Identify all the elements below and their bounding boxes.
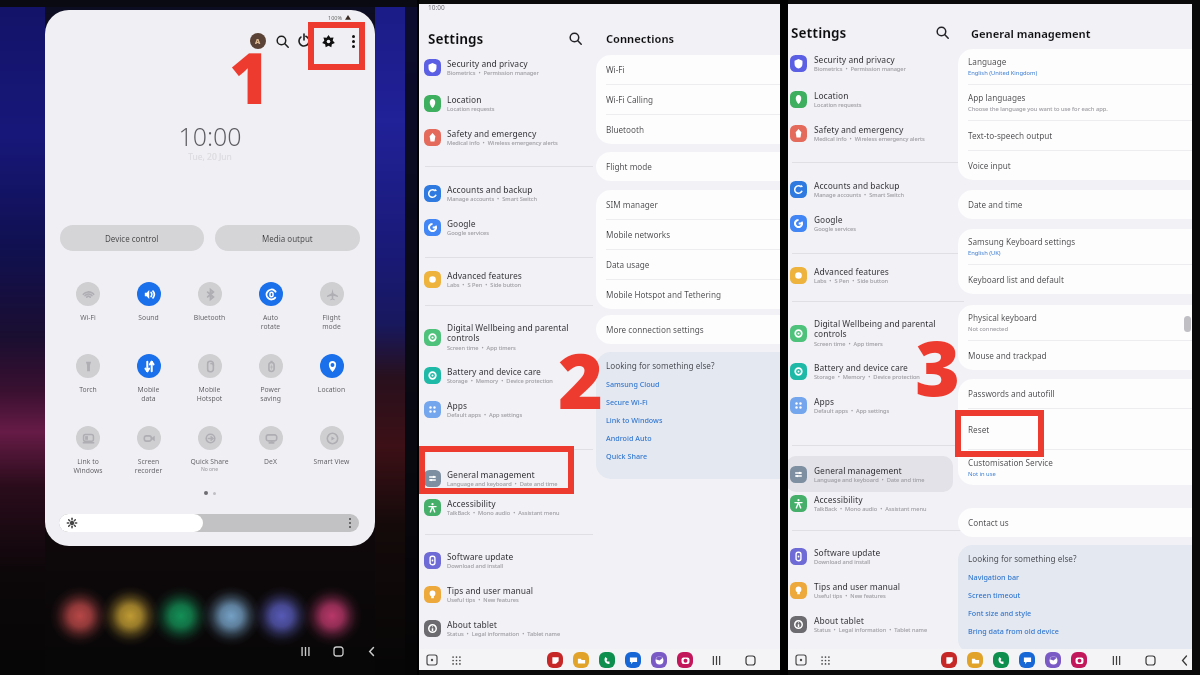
button[interactable]: Sound xyxy=(118,282,179,322)
button[interactable]: Home xyxy=(742,652,758,668)
button[interactable]: Camera xyxy=(677,652,693,668)
button[interactable]: Home xyxy=(1142,652,1158,668)
button[interactable]: App languages xyxy=(958,85,1200,120)
button[interactable]: Quick Share xyxy=(606,447,648,465)
staticText: Smart View xyxy=(301,457,362,466)
button[interactable]: Secure Wi-Fi xyxy=(606,393,648,411)
button[interactable]: Search settings xyxy=(564,27,586,49)
button[interactable]: Settings xyxy=(317,30,339,52)
button[interactable] xyxy=(788,456,953,492)
button[interactable]: Phone xyxy=(599,652,615,668)
button[interactable]: Mouse and trackpad xyxy=(958,341,1200,370)
button[interactable]: Messages xyxy=(1019,652,1035,668)
button[interactable]: Keyboard list and default xyxy=(958,265,1200,294)
button[interactable]: Physical keyboard xyxy=(958,305,1200,340)
staticText: Samsung Cloud xyxy=(606,379,660,389)
button[interactable]: Bring data from old device xyxy=(968,622,1059,640)
button[interactable]: Link to Windows xyxy=(606,411,663,429)
button[interactable]: Text-to-speech output xyxy=(958,121,1200,150)
staticText: English (UK) xyxy=(968,249,1001,257)
button[interactable]: Mobile Hotspot and Tethering xyxy=(596,280,780,309)
button[interactable]: Date and time xyxy=(958,190,1200,219)
staticText: Link to Windows xyxy=(606,415,663,425)
staticText: Quick Share xyxy=(606,451,648,461)
button[interactable]: Back xyxy=(1176,652,1192,668)
button[interactable]: All apps xyxy=(816,651,834,669)
staticText: Location xyxy=(814,90,849,101)
button[interactable]: Recents xyxy=(1108,652,1124,668)
button[interactable]: Internet xyxy=(651,652,667,668)
button[interactable]: Media output xyxy=(215,225,360,251)
button[interactable]: Device control xyxy=(60,225,204,251)
button[interactable]: Passwords and autofill xyxy=(958,379,1200,408)
staticText: TalkBack • Mono audio • Assistant menu xyxy=(447,509,560,517)
button[interactable]: Search xyxy=(271,30,293,52)
button[interactable]: Auto rotate xyxy=(240,282,301,331)
staticText: English (United Kingdom) xyxy=(968,69,1038,77)
button[interactable]: Bluetooth xyxy=(596,115,780,144)
button[interactable]: Quick Share xyxy=(179,426,240,473)
staticText: Wi-Fi xyxy=(606,64,625,75)
button[interactable]: More options xyxy=(342,30,364,52)
button[interactable]: Location xyxy=(301,354,362,394)
button[interactable]: More connection settings xyxy=(596,315,780,344)
staticText: Biometrics • Permission manager xyxy=(447,69,539,77)
staticText: Medical info • Wireless emergency alerts xyxy=(814,135,925,143)
button[interactable]: My Files xyxy=(573,652,589,668)
button[interactable]: Wi-Fi xyxy=(596,55,780,84)
button[interactable]: Samsung Cloud xyxy=(606,375,660,393)
button[interactable]: Bluetooth xyxy=(179,282,240,322)
staticText: Bluetooth xyxy=(606,124,644,135)
button[interactable]: Account xyxy=(247,30,269,52)
staticText: Language xyxy=(968,56,1007,67)
button[interactable]: Mobile Hotspot xyxy=(179,354,240,403)
button[interactable]: Power saving xyxy=(240,354,301,403)
button[interactable]: Reset xyxy=(958,409,1200,449)
staticText: Connections xyxy=(606,31,675,46)
staticText: Power saving xyxy=(240,385,301,403)
button[interactable]: Link to Windows xyxy=(58,426,118,475)
button[interactable]: Home xyxy=(320,633,356,669)
button[interactable]: Voice input xyxy=(958,151,1200,180)
button[interactable]: Screen recorder xyxy=(118,426,179,475)
button[interactable]: Power xyxy=(293,30,315,52)
button[interactable]: Navigation bar xyxy=(968,568,1020,586)
button[interactable]: My Files xyxy=(967,652,983,668)
staticText: Date and time xyxy=(968,199,1023,210)
button[interactable]: Internet xyxy=(1045,652,1061,668)
button[interactable]: SIM manager xyxy=(596,190,780,219)
button[interactable]: Font size and style xyxy=(968,604,1032,622)
button[interactable]: Contact us xyxy=(958,508,1200,537)
button[interactable]: Language xyxy=(958,49,1200,84)
button[interactable]: Flight mode xyxy=(301,282,362,331)
button[interactable] xyxy=(59,514,359,532)
button[interactable]: Data usage xyxy=(596,250,780,279)
button[interactable]: DeX xyxy=(240,426,301,466)
button[interactable]: Recent apps xyxy=(423,651,441,669)
button[interactable]: Screen timeout xyxy=(968,586,1021,604)
button[interactable]: Notes xyxy=(941,652,957,668)
button[interactable]: Android Auto xyxy=(606,429,652,447)
button[interactable]: Camera xyxy=(1071,652,1087,668)
button[interactable]: Notes xyxy=(547,652,563,668)
button[interactable]: Wi-Fi xyxy=(58,282,118,322)
button[interactable]: Mobile data xyxy=(118,354,179,403)
button[interactable]: Torch xyxy=(58,354,118,394)
button[interactable]: Flight mode xyxy=(596,152,780,181)
button[interactable]: Phone xyxy=(993,652,1009,668)
button[interactable]: Recents xyxy=(708,652,724,668)
button[interactable]: Search settings xyxy=(931,21,953,43)
staticText: More connection settings xyxy=(606,324,704,335)
button[interactable]: Recents xyxy=(290,636,320,666)
button[interactable]: Recent apps xyxy=(792,651,810,669)
button[interactable]: Smart View xyxy=(301,426,362,466)
button[interactable]: Back xyxy=(356,636,386,666)
button[interactable]: Messages xyxy=(625,652,641,668)
staticText: Device control xyxy=(105,233,159,244)
button[interactable]: Samsung Keyboard settings xyxy=(958,229,1200,264)
button[interactable]: Mobile networks xyxy=(596,220,780,249)
button[interactable]: All apps xyxy=(447,651,465,669)
button[interactable]: Wi-Fi Calling xyxy=(596,85,780,114)
button[interactable]: Customisation Service xyxy=(958,450,1200,485)
